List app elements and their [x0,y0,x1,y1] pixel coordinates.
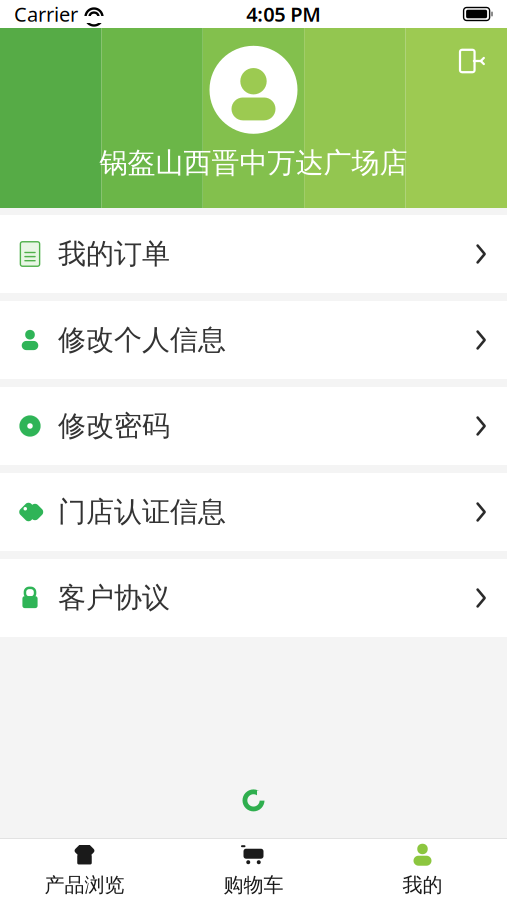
button[interactable]: 修改密码 [0,387,507,465]
staticText: 修改密码 [58,409,170,443]
button[interactable]: 客户协议 [0,559,507,637]
staticText: 我的订单 [58,237,170,271]
button[interactable]: 修改个人信息 [0,301,507,379]
staticText: 产品浏览 [44,873,124,897]
staticText: Carrier [14,1,78,27]
button[interactable]: 联系客服 [231,782,275,818]
button[interactable]: 退出登录 [451,38,497,84]
staticText: 4:05 PM [246,1,321,27]
staticText: 门店认证信息 [58,495,226,529]
staticText: 锅盔山西晋中万达广场店 [99,146,407,180]
button[interactable]: 我的订单 [0,215,507,293]
staticText: 购物车 [223,873,283,897]
staticText: 修改个人信息 [58,323,226,357]
button[interactable]: 我的 [338,839,507,900]
staticText: 我的 [402,873,442,897]
button[interactable]: 门店认证信息 [0,473,507,551]
button[interactable]: 购物车 [169,839,338,900]
staticText: 客户协议 [58,581,170,615]
button[interactable]: 产品浏览 [0,839,169,900]
